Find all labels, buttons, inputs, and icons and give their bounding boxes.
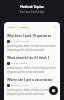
staticText: Increase Knowledge	[0, 10, 64, 14]
button[interactable]: Ask a question	[49, 86, 58, 95]
button[interactable]: What should I do if I think I have it?	[4, 54, 60, 76]
button[interactable]: Why does Covid-19 spread so fast?	[4, 32, 60, 54]
staticText: Lorem ipsum dolor sit amet consectetur a…	[7, 66, 57, 74]
staticText: Lorem ipsum dolor sit amet consectetur a…	[7, 44, 57, 52]
staticText: Hottest Topics	[0, 4, 64, 8]
button[interactable]: More	[53, 25, 57, 29]
staticText: Dr. Khan . 1d ago	[11, 84, 29, 87]
staticText: Where can I get a vaccination today?	[7, 78, 57, 82]
staticText: What should I do if I think I have it?	[7, 56, 57, 60]
button[interactable]: Newest	[7, 26, 16, 29]
button[interactable]: Where can I get a vaccination today?	[4, 76, 60, 98]
staticText: Dr. Smith . 2h ago	[11, 40, 30, 43]
button[interactable]: Popular	[20, 26, 29, 29]
staticText: Dr. Lee . 5h ago	[11, 62, 27, 65]
staticText: Why does Covid-19 spread so fast?	[7, 34, 57, 38]
staticText: Lorem ipsum dolor sit amet consectetur a…	[7, 88, 57, 96]
